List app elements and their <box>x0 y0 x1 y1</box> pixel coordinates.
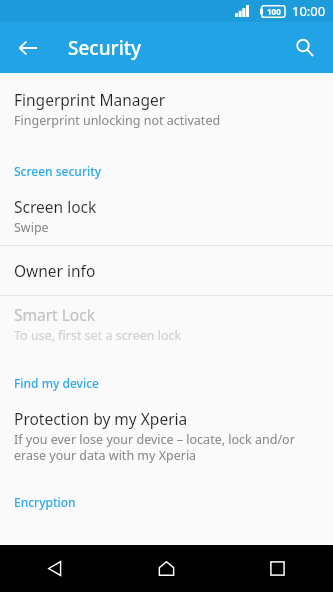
staticText: Fingerprint unlocking not activated <box>14 112 221 129</box>
staticText: Security <box>68 35 142 61</box>
button[interactable]: Screen lock <box>0 188 333 245</box>
button[interactable]: Home <box>111 545 222 592</box>
staticText: Swipe <box>14 219 49 236</box>
button[interactable]: Navigate up <box>6 26 50 70</box>
staticText: 10:00 <box>292 2 326 20</box>
staticText: Owner info <box>14 260 96 281</box>
button[interactable]: Smart Lock <box>0 296 333 353</box>
staticText: 100 <box>267 6 281 17</box>
button[interactable]: Owner info <box>0 246 333 295</box>
staticText: Protection by my Xperia <box>14 408 188 429</box>
staticText: Fingerprint Manager <box>14 89 166 110</box>
staticText: If you ever lose your device – locate, l… <box>14 431 295 463</box>
staticText: Encryption <box>14 494 76 510</box>
staticText: Find my device <box>14 375 99 391</box>
staticText: Smart Lock <box>14 304 95 325</box>
button[interactable]: Protection by my Xperia <box>0 400 333 472</box>
staticText: Screen security <box>14 163 102 179</box>
button[interactable]: Search <box>283 26 327 70</box>
staticText: Screen lock <box>14 196 97 217</box>
button[interactable]: Fingerprint Manager <box>0 81 333 138</box>
button[interactable]: Recents <box>222 545 333 592</box>
staticText: To use, first set a screen lock <box>14 327 182 344</box>
button[interactable]: Back <box>0 545 111 592</box>
